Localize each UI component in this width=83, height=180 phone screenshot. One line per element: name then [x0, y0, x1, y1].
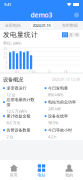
- button[interactable]: 全部电站: [3, 23, 23, 28]
- staticText: 总发电量统计数据: [6, 97, 34, 107]
- button[interactable]: 月: [68, 32, 74, 37]
- button[interactable]: 告警设备数量: [0, 126, 41, 140]
- staticText: 今日等效小时: [48, 128, 72, 133]
- staticText: 12: [48, 70, 52, 74]
- staticText: 9:41: [4, 2, 11, 7]
- staticText: 0: [5, 66, 7, 69]
- button[interactable]: 日: [62, 32, 68, 37]
- staticText: 日: [63, 32, 67, 37]
- staticText: 累计收益金额: [6, 114, 30, 119]
- button[interactable]: 首页: [0, 164, 28, 177]
- staticText: 2024-01-15 12:30: [52, 78, 80, 81]
- button[interactable]: 年: [74, 32, 80, 37]
- staticText: 2 台: [6, 134, 13, 139]
- button[interactable]: 设备在线率: [41, 112, 83, 126]
- staticText: 00: [15, 70, 19, 74]
- staticText: 发电量统计: [3, 31, 38, 39]
- staticText: 10: [3, 56, 7, 60]
- staticText: 今日发电量: [48, 86, 68, 91]
- staticText: 4.2 h: [48, 134, 56, 139]
- staticText: 2024-01-15: [32, 23, 50, 28]
- button[interactable]: 2024-01-15: [30, 23, 52, 28]
- staticText: 设备在线率: [48, 114, 68, 119]
- staticText: 单位: kWh: [3, 40, 21, 46]
- staticText: 逆变器运行: [6, 86, 26, 91]
- staticText: 首页: [10, 172, 18, 177]
- button[interactable]: 总发电量统计数据: [0, 98, 41, 112]
- staticText: 8.6 万元: [6, 120, 20, 125]
- button[interactable]: 累计收益金额: [0, 112, 41, 126]
- button[interactable]: 逆变器运行: [0, 84, 41, 98]
- staticText: 12.5 万kWh: [6, 109, 26, 114]
- staticText: 年: [75, 32, 79, 37]
- staticText: 我的: [65, 173, 73, 178]
- staticText: 98.5%: [48, 120, 58, 125]
- staticText: demo3: [30, 11, 52, 19]
- staticText: 全部电站: [5, 23, 21, 28]
- button[interactable]: Settings: [74, 12, 79, 17]
- staticText: 18: [64, 70, 68, 74]
- staticText: 设备概况: [3, 76, 23, 83]
- staticText: 实时数据: [62, 23, 78, 28]
- staticText: 告警设备数量: [6, 128, 30, 133]
- staticText: 月: [69, 32, 73, 37]
- staticText: 06: [31, 70, 35, 74]
- button[interactable]: 电站: [28, 164, 55, 178]
- staticText: 245 kW: [48, 106, 61, 111]
- staticText: 856 kWh: [48, 92, 63, 97]
- button[interactable]: 实时数据: [60, 23, 80, 28]
- staticText: 20: [3, 47, 7, 51]
- staticText: 12 台: [6, 92, 15, 97]
- button[interactable]: 今日等效小时: [41, 126, 83, 140]
- staticText: 电站当前总功率: [48, 100, 76, 105]
- staticText: 电站: [37, 173, 45, 178]
- button[interactable]: 电站当前总功率: [41, 98, 83, 112]
- staticText: 5: [5, 61, 7, 65]
- button[interactable]: 我的: [55, 164, 83, 178]
- button[interactable]: 今日发电量: [41, 84, 83, 98]
- staticText: 15: [3, 52, 7, 55]
